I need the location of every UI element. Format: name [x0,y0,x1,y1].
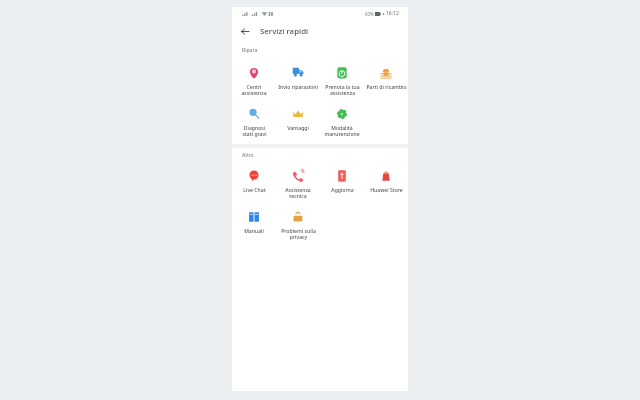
staticText: 16:12 [386,10,399,17]
staticText: Aggiorna [331,187,354,194]
staticText: Problemi sulla privacy [281,228,316,241]
button[interactable]: Parti di ricambio [364,60,408,101]
staticText: Live Chat [243,187,266,194]
staticText: Centri assistenza [241,84,267,97]
staticText: Huawei Store [370,187,403,194]
button[interactable]: Invio riparazioni [276,60,320,101]
staticText: Prenota la tua assistenza [325,84,360,97]
staticText: Vantaggi [287,125,309,132]
staticText: Modalità manutenzione [324,125,360,138]
button[interactable]: Centri assistenza [232,60,276,101]
staticText: Parti di ricambio [366,84,407,91]
staticText: 60% [365,11,374,17]
staticText: Diagnosi stati gravi [242,125,267,138]
staticText: Altro [242,152,254,159]
button[interactable]: Problemi sulla privacy [276,204,320,245]
staticText: Ripara [242,47,258,54]
button[interactable]: Prenota la tua assistenza [320,60,364,101]
button[interactable]: Vantaggi [276,101,320,142]
button[interactable]: Live Chat [232,163,276,204]
button[interactable]: Back [232,20,257,43]
button[interactable]: Assistenza tecnica [276,163,320,204]
staticText: Servizi rapidi [260,26,309,37]
staticText: Assistenza tecnica [285,187,311,200]
button[interactable]: Aggiorna [320,163,364,204]
staticText: Invio riparazioni [278,84,318,91]
button[interactable]: Modalità manutenzione [320,101,364,142]
button[interactable]: Diagnosi stati gravi [232,101,276,142]
button[interactable]: Manuali [232,204,276,245]
button[interactable]: Huawei Store [364,163,408,204]
staticText: Manuali [244,228,264,235]
